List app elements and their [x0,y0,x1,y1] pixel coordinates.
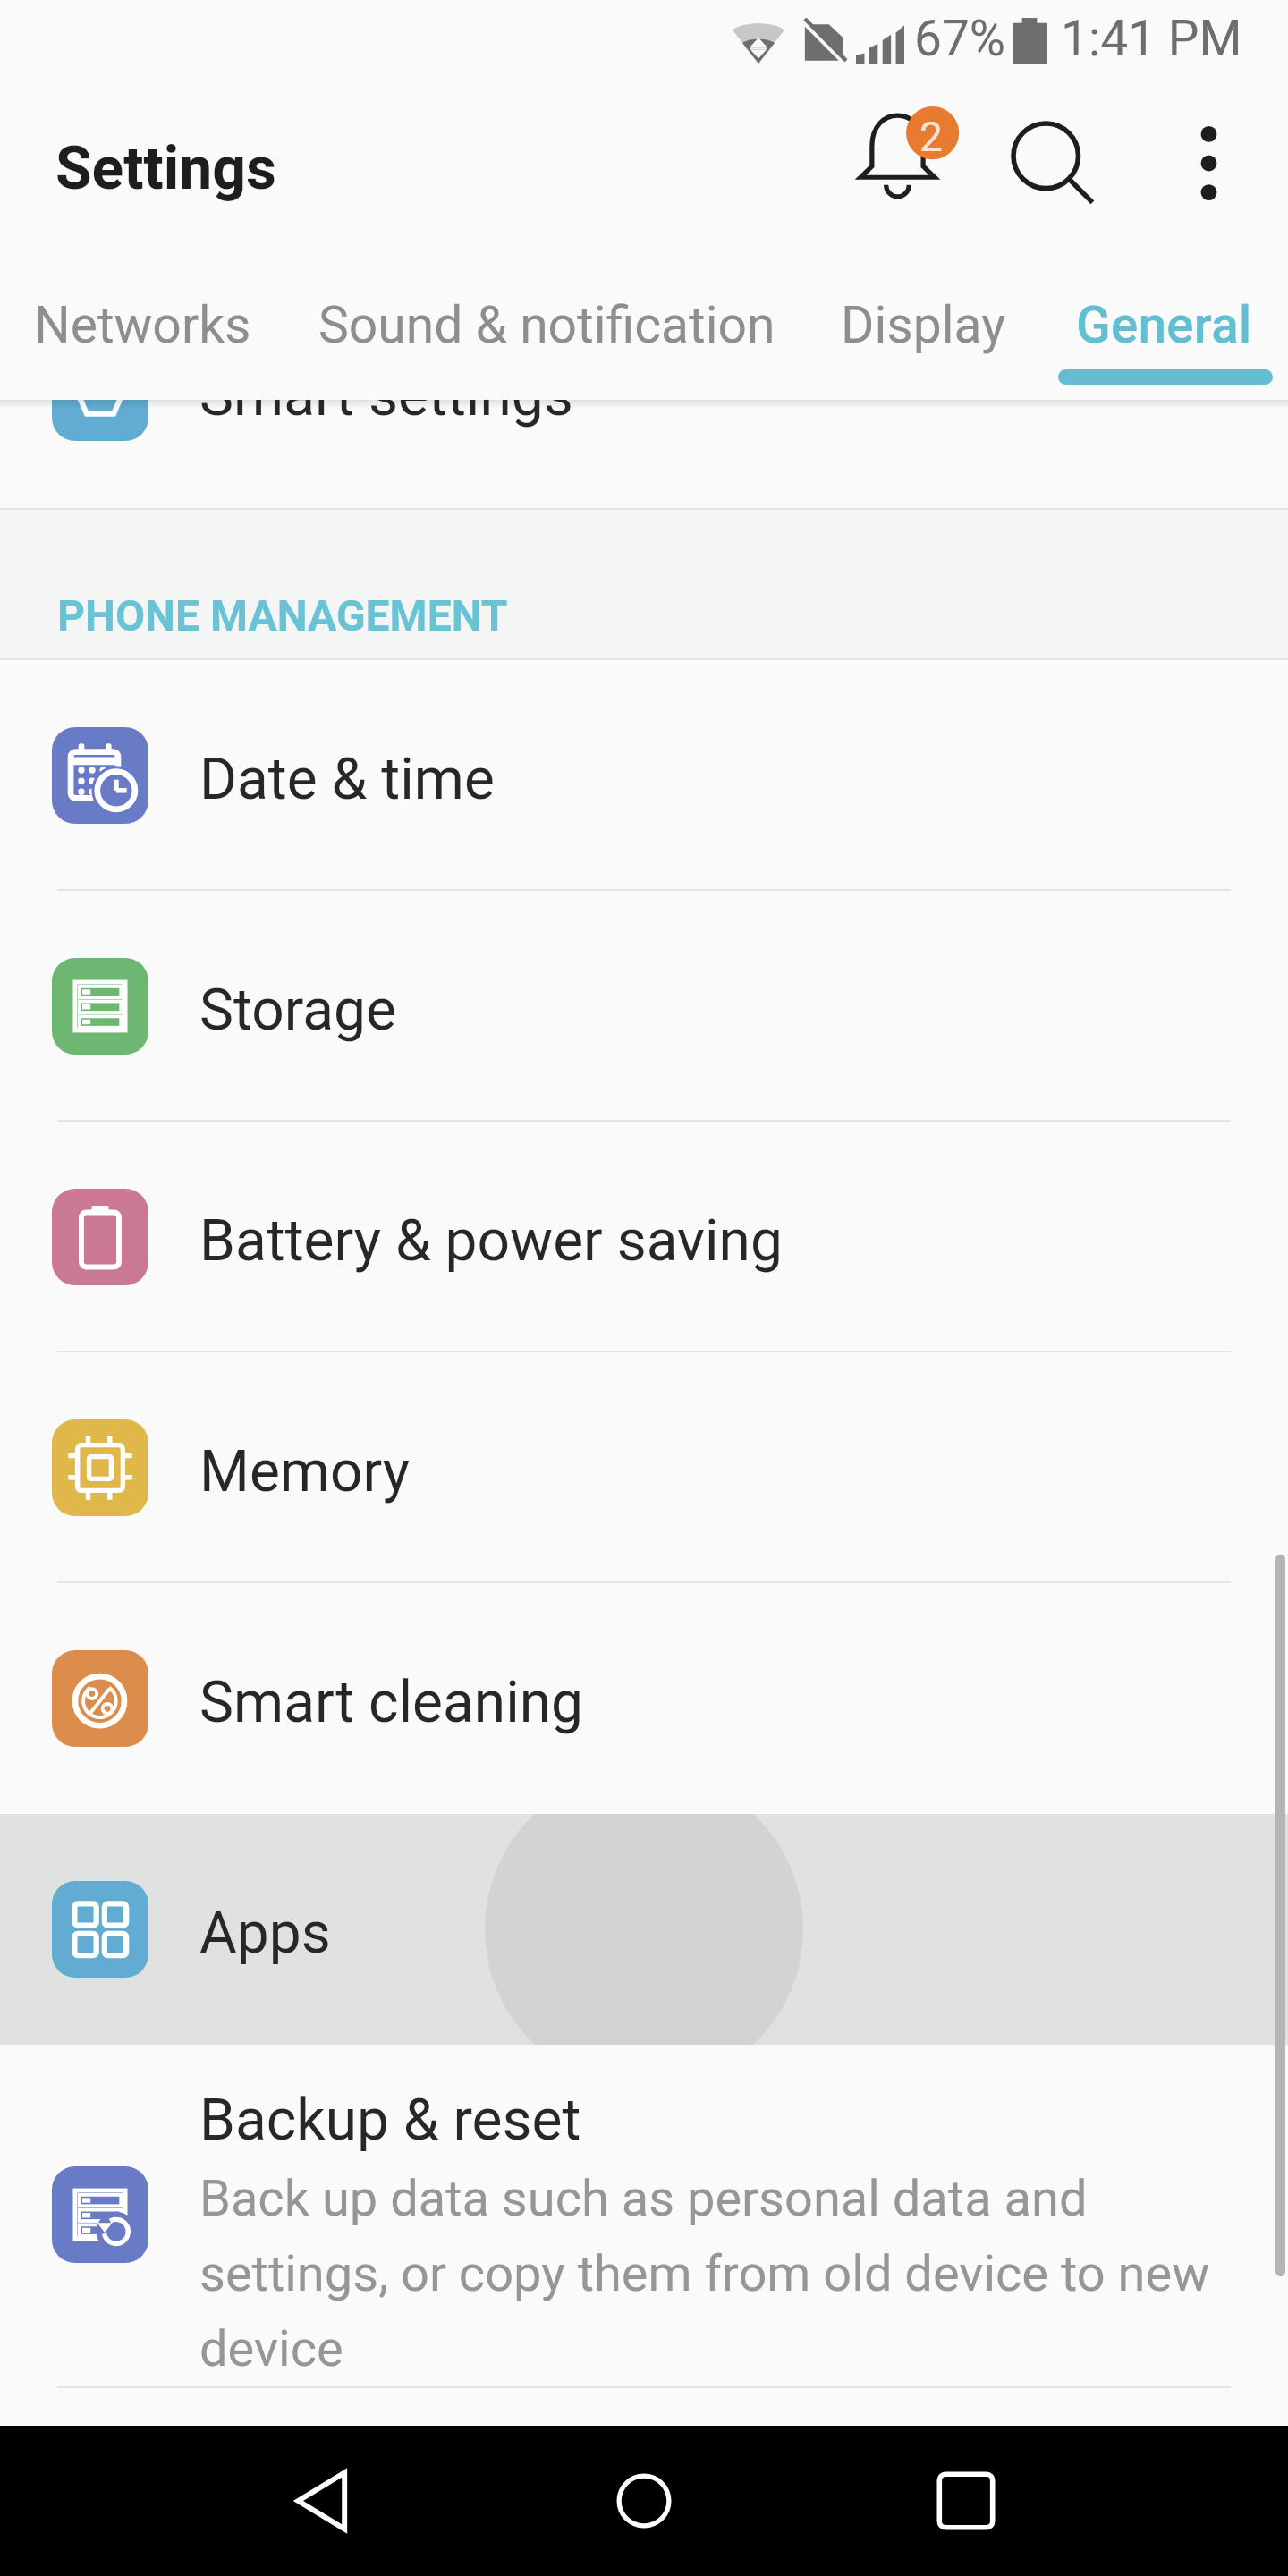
button[interactable]: Back [255,2426,389,2576]
button[interactable]: Memory [0,1352,1288,1583]
staticText: Battery & power saving [199,1207,783,1275]
button[interactable]: Notifications [832,93,968,229]
button[interactable]: Apps [0,1814,1288,2045]
staticText: Display [841,295,1006,355]
staticText: PHONE MANAGEMENT [57,590,508,640]
staticText: Sound & notification [318,295,775,355]
button[interactable]: Backup & reset [0,2045,1288,2388]
staticText: Back up data such as personal data and s… [199,2169,1246,2377]
button[interactable]: Smart settings [0,288,1288,508]
staticText: Networks [34,295,251,355]
staticText: 67% [914,10,1006,67]
staticText: Smart cleaning [199,1669,583,1736]
staticText: 2 [919,113,943,161]
staticText: Storage [199,977,396,1044]
button[interactable]: General [1076,258,1252,400]
button[interactable]: More options [1141,93,1277,229]
button[interactable]: Date & time [0,660,1288,891]
staticText: Apps [199,1900,331,1967]
button[interactable]: Home [577,2426,711,2576]
button[interactable]: Recents [899,2426,1033,2576]
button[interactable]: Display [841,258,1006,400]
button[interactable]: Networks [34,258,251,400]
button[interactable]: Battery & power saving [0,1122,1288,1352]
staticText: Date & time [199,746,495,813]
button[interactable]: Storage [0,891,1288,1122]
staticText: General [1076,295,1252,355]
staticText: Smart settings [199,362,573,429]
button[interactable]: Smart cleaning [0,1583,1288,1814]
staticText: 1:41 PM [1061,10,1242,67]
staticText: Memory [199,1438,410,1505]
button[interactable]: Sound & notification [318,258,775,400]
staticText: Settings [55,134,276,203]
button[interactable]: Search [979,93,1114,229]
staticText: Backup & reset [199,2087,581,2154]
